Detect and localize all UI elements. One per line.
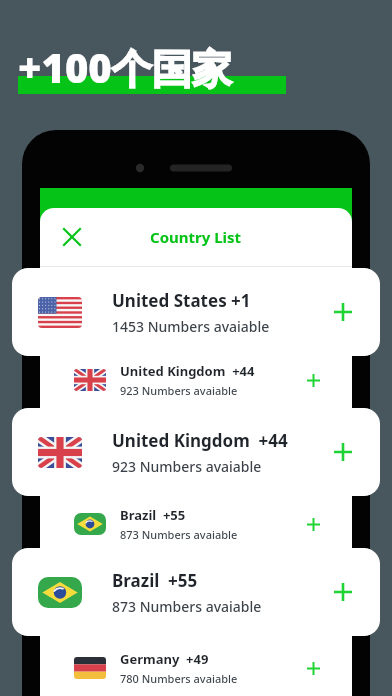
staticText: Canada +1 (120, 434, 191, 452)
staticText: United Kingdom +44 (120, 362, 255, 380)
button[interactable]: Add Brazil +55 (324, 573, 362, 611)
staticText: 780 Numbers avaiable (120, 671, 238, 686)
button[interactable]: Add Brazil (298, 509, 328, 539)
button[interactable]: United Kingdom +44 (50, 348, 342, 412)
staticText: 1453 Numbers avaiable (112, 317, 270, 336)
staticText: Brazil +55 (112, 569, 198, 592)
button[interactable]: Add United States +1 (324, 293, 362, 331)
staticText: 873 Numbers avaiable (112, 597, 262, 616)
staticText: Russia +7 (120, 290, 184, 308)
staticText: 923 Numbers avaiable (112, 457, 262, 476)
staticText: +100个国家 (18, 40, 232, 95)
button[interactable]: Add Germany (298, 653, 328, 683)
staticText: United Kingdom +44 (112, 429, 288, 452)
button[interactable]: Germany +49 (50, 636, 342, 696)
staticText: Germany +49 (120, 650, 209, 668)
button[interactable]: Add United Kingdom (298, 365, 328, 395)
button[interactable]: Brazil +55 (12, 548, 380, 636)
button[interactable]: United States +1 (12, 268, 380, 356)
button[interactable]: Close (52, 217, 92, 257)
button[interactable]: France +33 (50, 564, 342, 628)
button[interactable]: Add United Kingdom +44 (324, 433, 362, 471)
staticText: 451 Numbers avaiable (120, 599, 238, 614)
staticText: United States +1 (112, 289, 251, 312)
button[interactable]: Brazil +55 (50, 492, 342, 556)
staticText: 873 Numbers avaiable (120, 527, 238, 542)
staticText: Country List (150, 227, 242, 247)
staticText: 923 Numbers avaiable (120, 383, 238, 398)
button[interactable]: Canada +1 (50, 420, 342, 484)
staticText: France +33 (120, 578, 193, 596)
button[interactable]: Russia +7 (50, 276, 342, 340)
button[interactable]: United Kingdom +44 (12, 408, 380, 496)
staticText: 564 Numbers avaiable (120, 455, 238, 470)
staticText: 4221 Numbers avaiable (120, 311, 244, 326)
staticText: Brazil +55 (120, 506, 186, 524)
